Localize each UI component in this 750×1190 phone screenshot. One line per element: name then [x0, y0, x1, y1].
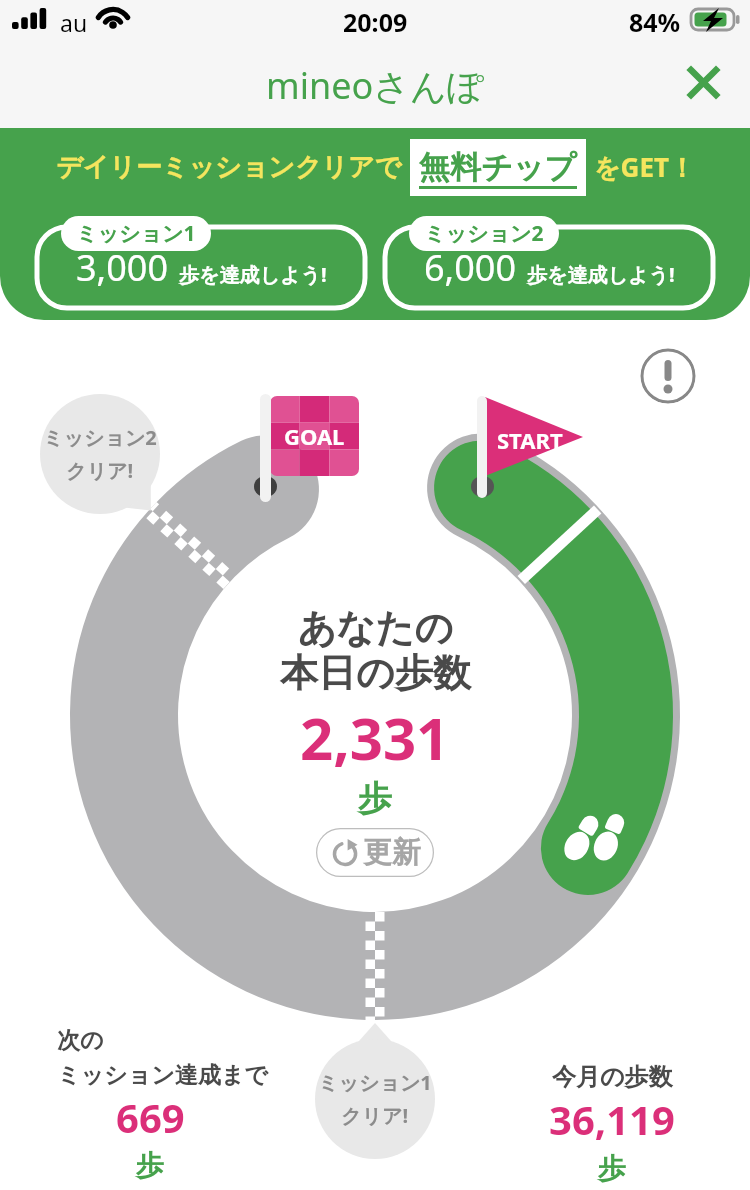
staticText: 歩	[136, 1148, 164, 1183]
staticText: 歩	[358, 777, 392, 820]
staticText: 3,000	[76, 243, 169, 292]
staticText: あなたの 本日の歩数	[280, 604, 471, 697]
staticText: 20:09	[343, 5, 408, 39]
button[interactable]: 3,000	[37, 227, 365, 308]
staticText: 歩	[598, 1151, 626, 1186]
staticText: 無料チップ	[419, 148, 577, 187]
staticText: 84%	[629, 5, 681, 39]
staticText: をGET！	[594, 149, 695, 185]
staticText: au	[60, 7, 88, 38]
staticText: 36,119	[549, 1092, 675, 1146]
staticText: クリア!	[66, 457, 134, 484]
staticText: デイリーミッションクリアで	[56, 151, 402, 184]
staticText: クリア!	[341, 1102, 409, 1129]
staticText: ミッション2	[43, 424, 157, 451]
button[interactable]: 更新	[316, 828, 434, 877]
staticText: 今月の歩数	[552, 1062, 673, 1092]
staticText: START	[497, 425, 563, 455]
staticText: GOAL	[284, 421, 345, 451]
staticText: ミッション達成まで	[57, 1061, 268, 1090]
staticText: mineoさんぽ	[266, 61, 484, 110]
staticText: ミッション1	[318, 1069, 432, 1096]
staticText: ミッション2	[424, 219, 544, 248]
staticText: 更新	[363, 834, 421, 871]
staticText: ミッション1	[76, 219, 196, 248]
staticText: 次の	[57, 1026, 104, 1055]
staticText: 2,331	[300, 698, 450, 777]
button[interactable]: Information	[640, 348, 696, 404]
staticText: 6,000	[424, 243, 517, 292]
staticText: 669	[116, 1090, 185, 1144]
staticText: 歩を達成しよう!	[179, 261, 327, 288]
button[interactable]: 6,000	[385, 227, 713, 308]
button[interactable]: Close	[675, 54, 733, 112]
staticText: 歩を達成しよう!	[527, 261, 675, 288]
